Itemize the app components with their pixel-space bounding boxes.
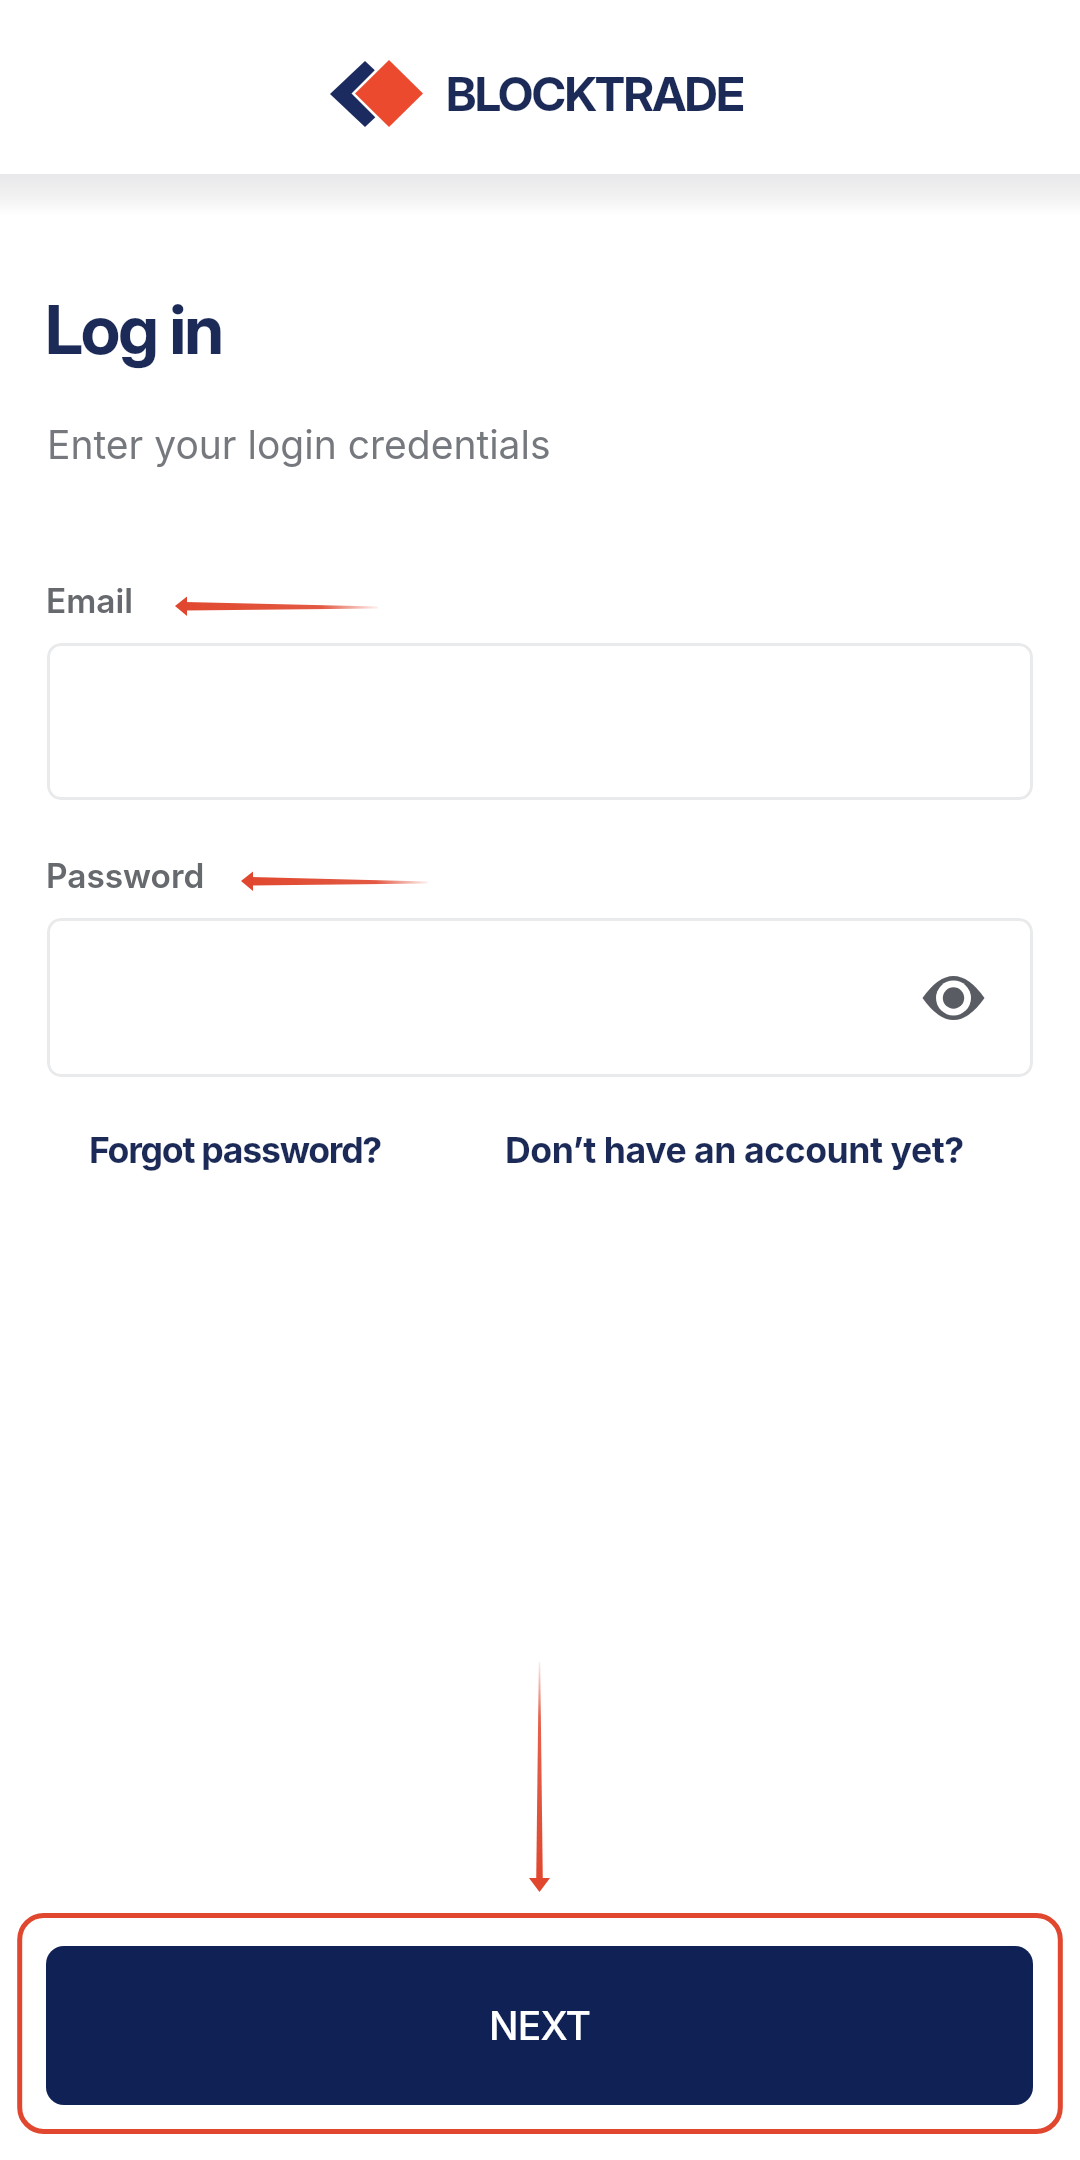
staticText: BLOCKTRADE — [446, 65, 744, 122]
button[interactable]: NEXT — [46, 1946, 1033, 2105]
staticText: Log in — [45, 288, 223, 370]
button[interactable]: Don’t have an account yet? — [505, 1128, 964, 1171]
staticText: Enter your login credentials — [47, 421, 551, 468]
button[interactable]: Forgot password? — [89, 1128, 382, 1171]
button[interactable] — [921, 974, 986, 1022]
staticText: NEXT — [489, 2002, 591, 2049]
staticText: Email — [46, 581, 133, 621]
button[interactable] — [47, 643, 1033, 800]
button[interactable] — [47, 918, 1033, 1077]
staticText: Password — [46, 856, 205, 896]
